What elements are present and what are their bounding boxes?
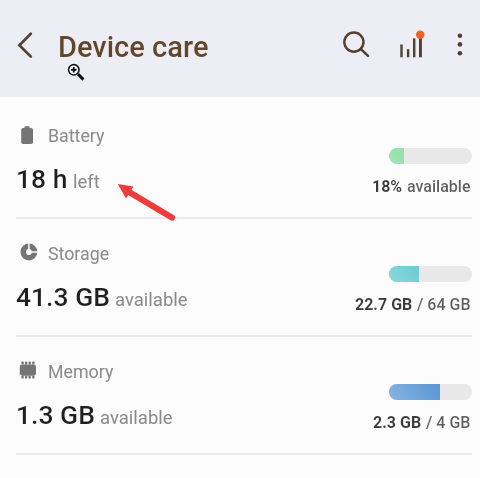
button[interactable]: Diagnostics [394,22,434,62]
staticText: 2.3 GB [373,413,422,432]
staticText: 22.7 GB [355,295,413,314]
staticText: Battery [48,125,105,146]
button[interactable]: Storage [0,218,480,336]
staticText: 18% [372,177,403,196]
button[interactable]: More options [440,24,480,64]
staticText: 41.3 GB [16,281,110,312]
staticText: available [115,289,188,311]
button[interactable]: Back [5,25,45,65]
staticText: available [100,407,173,429]
staticText: 1.3 GB [16,399,95,430]
staticText: available [403,177,471,196]
staticText: / 64 GB [413,295,471,314]
staticText: Device care [58,30,209,64]
button[interactable]: Search [334,22,374,62]
staticText: left [73,171,100,193]
button[interactable]: Memory [0,336,480,454]
button[interactable]: Battery [0,100,480,218]
staticText: / 4 GB [422,413,471,432]
staticText: Memory [48,361,114,382]
staticText: Storage [48,243,110,264]
staticText: 18 h [16,163,68,194]
